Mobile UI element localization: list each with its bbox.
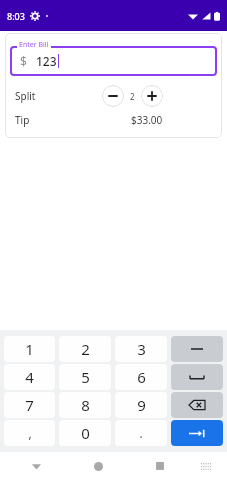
button[interactable]: Recents xyxy=(129,452,191,480)
button[interactable]: 0 xyxy=(59,420,111,446)
staticText: . xyxy=(139,425,143,441)
staticText: 6 xyxy=(137,367,146,387)
staticText: 9 xyxy=(137,395,146,415)
staticText: Split xyxy=(15,89,36,103)
button[interactable]: $ xyxy=(10,46,217,76)
button[interactable]: Space xyxy=(171,364,223,390)
button[interactable]: 6 xyxy=(115,364,167,390)
button[interactable]: Backspace xyxy=(171,392,223,418)
button[interactable]: Next xyxy=(171,420,223,446)
staticText: Tip xyxy=(15,113,30,127)
button[interactable]: 5 xyxy=(59,364,111,390)
button[interactable]: 3 xyxy=(115,336,167,362)
button[interactable]: 1 xyxy=(4,336,55,362)
staticText: 5 xyxy=(81,367,90,387)
staticText: 8 xyxy=(81,395,90,415)
staticText: Enter Bill xyxy=(19,40,49,50)
button[interactable]: Switch keyboard xyxy=(191,452,221,480)
button[interactable]: Home xyxy=(67,452,129,480)
button[interactable]: , xyxy=(4,420,55,446)
staticText: $ xyxy=(20,53,27,69)
staticText: 1 xyxy=(25,339,34,359)
staticText: 8:03 xyxy=(7,10,25,22)
staticText: 123 xyxy=(36,53,57,69)
button[interactable]: 9 xyxy=(115,392,167,418)
button[interactable]: 2 xyxy=(59,336,111,362)
staticText: , xyxy=(28,425,32,441)
staticText: 3 xyxy=(137,339,146,359)
button[interactable]: Increase split xyxy=(141,85,163,107)
staticText: 0 xyxy=(81,423,90,443)
staticText: 4 xyxy=(25,367,34,387)
button[interactable]: Decrease split xyxy=(102,85,124,107)
staticText: $33.00 xyxy=(131,113,163,127)
staticText: 2 xyxy=(81,339,90,359)
button[interactable]: . xyxy=(115,420,167,446)
button[interactable]: 4 xyxy=(4,364,55,390)
button[interactable]: Back xyxy=(6,452,67,480)
button[interactable]: 7 xyxy=(4,392,55,418)
staticText: 2 xyxy=(130,91,135,102)
button[interactable]: 8 xyxy=(59,392,111,418)
staticText: 7 xyxy=(25,395,34,415)
button[interactable]: Minus xyxy=(171,336,223,362)
